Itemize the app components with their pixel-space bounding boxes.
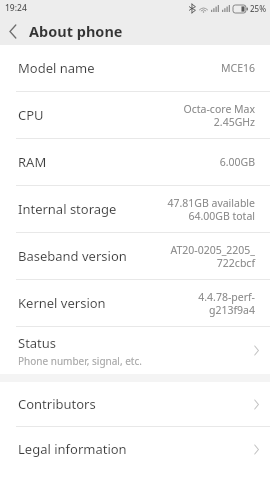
button[interactable]: Contributors: [0, 382, 270, 426]
button[interactable]: RAM: [0, 139, 270, 185]
staticText: Phone number, signal, etc.: [18, 354, 142, 368]
staticText: Octa-core Max 2.45GHz: [183, 102, 255, 129]
button[interactable]: Legal information: [0, 427, 270, 471]
button[interactable]: Back: [0, 18, 26, 44]
staticText: About phone: [29, 21, 123, 41]
button[interactable]: Model name: [0, 45, 270, 91]
button[interactable]: Kernel version: [0, 280, 270, 326]
staticText: CPU: [18, 106, 183, 124]
staticText: 19:24: [5, 2, 27, 14]
staticText: Internal storage: [18, 200, 167, 218]
button[interactable]: Internal storage: [0, 186, 270, 232]
staticText: Legal information: [18, 440, 127, 458]
button[interactable]: Baseband version: [0, 233, 270, 279]
staticText: Status: [18, 334, 57, 352]
staticText: 4.4.78-perf- g213f9a4: [198, 290, 255, 317]
staticText: AT20-0205_2205_ 722cbcf: [170, 243, 255, 270]
staticText: Baseband version: [18, 247, 170, 265]
staticText: 47.81GB available 64.00GB total: [167, 196, 255, 223]
button[interactable]: CPU: [0, 92, 270, 138]
staticText: Model name: [18, 59, 220, 77]
button[interactable]: Status: [0, 327, 270, 374]
staticText: MCE16: [220, 61, 255, 75]
staticText: RAM: [18, 153, 219, 171]
staticText: Contributors: [18, 395, 96, 413]
staticText: Kernel version: [18, 294, 198, 312]
staticText: 25%: [250, 3, 266, 14]
staticText: 6.00GB: [219, 155, 255, 169]
